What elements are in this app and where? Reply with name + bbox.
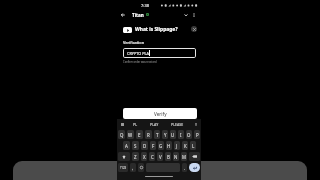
staticText: What is Slippage?: [135, 26, 178, 33]
staticText: .: [184, 165, 186, 171]
button[interactable]: R: [145, 130, 152, 139]
staticText: L: [192, 143, 195, 149]
staticText: CRYPTO PLA: [127, 51, 149, 56]
button[interactable]: ?123: [118, 163, 128, 172]
button[interactable]: B: [165, 152, 171, 161]
staticText: H: [167, 143, 171, 149]
staticText: M: [182, 154, 186, 160]
staticText: ?123: [120, 166, 127, 170]
button[interactable]: ,: [130, 163, 136, 172]
staticText: S: [134, 143, 137, 149]
staticText: F: [152, 143, 155, 149]
staticText: W: [128, 132, 133, 138]
button[interactable]: Backspace: [189, 152, 200, 161]
button[interactable]: Expand: [182, 11, 190, 19]
button[interactable]: C: [149, 152, 155, 161]
button[interactable]: A: [123, 141, 130, 150]
button[interactable]: Emoji: [138, 163, 144, 172]
button[interactable]: Back: [119, 11, 127, 19]
button[interactable]: T: [154, 130, 160, 139]
button[interactable]: What is Slippage?: [123, 26, 178, 33]
staticText: Y: [164, 132, 167, 138]
button[interactable]: K: [182, 141, 188, 150]
button[interactable]: J: [174, 141, 180, 150]
staticText: U: [171, 132, 175, 138]
staticText: 7:38: [141, 3, 149, 8]
button[interactable]: Y: [162, 130, 168, 139]
button[interactable]: Z: [132, 152, 139, 161]
button[interactable]: Verify: [123, 108, 197, 119]
button[interactable]: Close: [191, 26, 197, 32]
button[interactable]: P: [194, 130, 200, 139]
button[interactable]: Voice input: [193, 121, 199, 127]
staticText: A: [125, 143, 128, 149]
button[interactable]: L: [190, 141, 196, 150]
button[interactable]: D: [141, 141, 148, 150]
button[interactable]: S: [132, 141, 139, 150]
staticText: O: [187, 132, 191, 138]
staticText: Confirm order was received: [123, 60, 157, 64]
button[interactable]: N: [173, 152, 179, 161]
button[interactable]: U: [170, 130, 176, 139]
staticText: Q: [120, 132, 124, 138]
staticText: N: [174, 154, 178, 160]
staticText: Z: [134, 154, 137, 160]
staticText: PLEASE: [171, 122, 184, 127]
button[interactable]: Shift: [118, 152, 130, 161]
button[interactable]: M: [181, 152, 187, 161]
button[interactable]: O: [186, 130, 192, 139]
button[interactable]: Enter: [189, 163, 200, 172]
button[interactable]: X: [141, 152, 147, 161]
staticText: Titan: [132, 12, 144, 18]
staticText: T: [156, 132, 159, 138]
button[interactable]: H: [166, 141, 172, 150]
staticText: D: [143, 143, 147, 149]
button[interactable]: Keyboard menu: [119, 121, 125, 127]
staticText: J: [176, 143, 178, 149]
staticText: Verification: [123, 40, 145, 45]
button[interactable]: .: [182, 163, 187, 172]
button[interactable]: E: [136, 130, 143, 139]
staticText: R: [147, 132, 150, 138]
button[interactable]: G: [158, 141, 164, 150]
staticText: X: [143, 154, 146, 160]
staticText: G: [159, 143, 163, 149]
staticText: I: [180, 132, 182, 138]
staticText: E: [138, 132, 141, 138]
staticText: C: [151, 154, 154, 160]
staticText: K: [184, 143, 187, 149]
staticText: PLAY: [150, 122, 159, 127]
staticText: ,: [132, 165, 134, 171]
staticText: P: [196, 132, 199, 138]
button[interactable]: Q: [118, 130, 125, 139]
button[interactable]: W: [127, 130, 134, 139]
staticText: PL: [133, 122, 138, 127]
staticText: V: [159, 154, 162, 160]
staticText: B: [167, 154, 170, 160]
button[interactable]: I: [178, 130, 184, 139]
button[interactable]: V: [157, 152, 163, 161]
button[interactable]: More options: [190, 11, 198, 19]
staticText: Verify: [154, 111, 167, 117]
button[interactable]: F: [150, 141, 156, 150]
